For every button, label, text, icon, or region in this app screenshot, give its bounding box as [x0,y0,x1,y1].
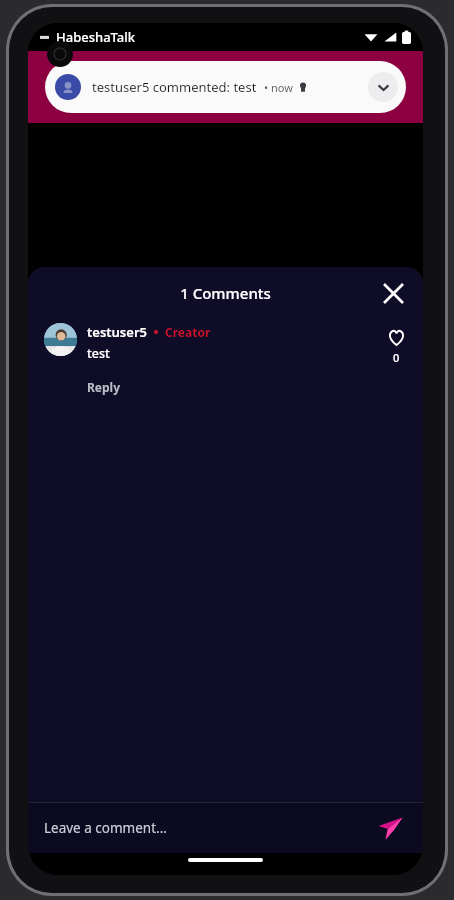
button[interactable]: testuser5 [28,319,423,403]
button[interactable]: Like comment [384,325,409,369]
staticText: testuser5 commented: test [92,78,257,96]
button[interactable]: Close comments [375,275,411,311]
staticText: testuser5 [87,323,147,341]
button[interactable]: Expand notification [368,72,398,102]
staticText: test [87,345,110,362]
button[interactable]: Leave a comment... [44,819,371,837]
staticText: HabeshaTalk [56,28,136,46]
staticText: Leave a comment... [44,819,167,837]
staticText: Reply [87,379,121,395]
button[interactable]: testuser5 commented: test [45,61,406,113]
staticText: Creator [165,324,211,340]
button[interactable]: Reply [87,379,127,397]
staticText: • now [264,80,293,95]
button[interactable]: Send comment [371,809,409,847]
staticText: 0 [393,350,400,365]
staticText: 1 Comments [180,283,271,303]
